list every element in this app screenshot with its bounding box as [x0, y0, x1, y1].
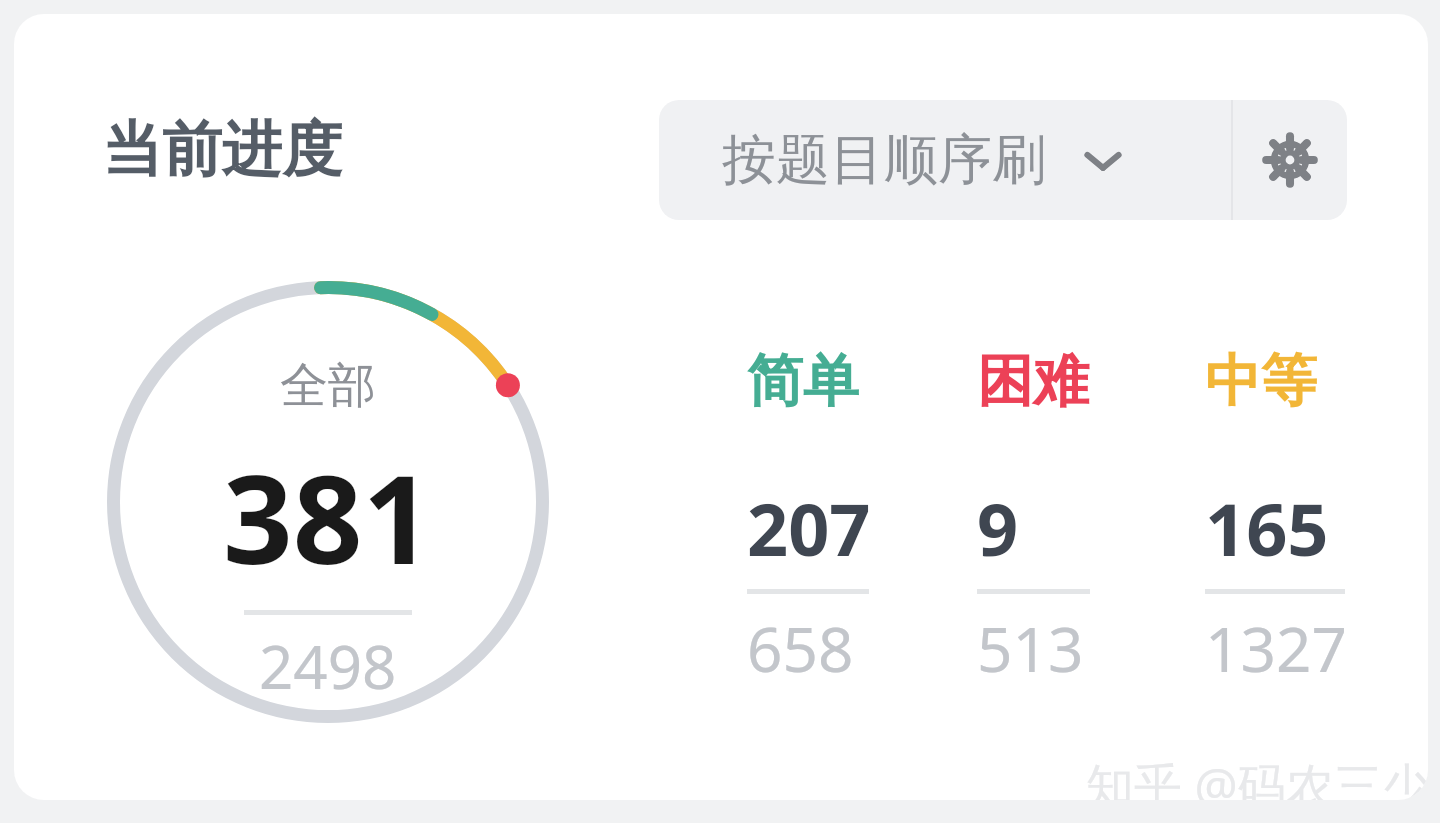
staticText: 165: [1205, 479, 1329, 577]
staticText: 1327: [1205, 606, 1347, 690]
staticText: 513: [977, 606, 1084, 690]
staticText: 2498: [259, 625, 397, 707]
button[interactable]: 困难: [977, 346, 1112, 690]
button[interactable]: 中等: [1205, 346, 1367, 690]
staticText: 9: [977, 479, 1019, 577]
staticText: 658: [747, 606, 854, 690]
staticText: 全部: [280, 356, 376, 416]
staticText: 207: [747, 479, 871, 577]
staticText: 381: [223, 434, 433, 600]
staticText: 知乎 @码农三少: [1086, 752, 1428, 800]
button[interactable]: Settings: [1233, 100, 1347, 220]
staticText: 按题目顺序刷: [722, 126, 1046, 194]
staticText: 简单: [747, 346, 859, 417]
staticText: 困难: [977, 346, 1089, 417]
staticText: 当前进度: [102, 112, 342, 188]
button[interactable]: 按题目顺序刷: [659, 100, 1231, 220]
button[interactable]: 简单: [747, 346, 891, 690]
staticText: 中等: [1205, 346, 1317, 417]
